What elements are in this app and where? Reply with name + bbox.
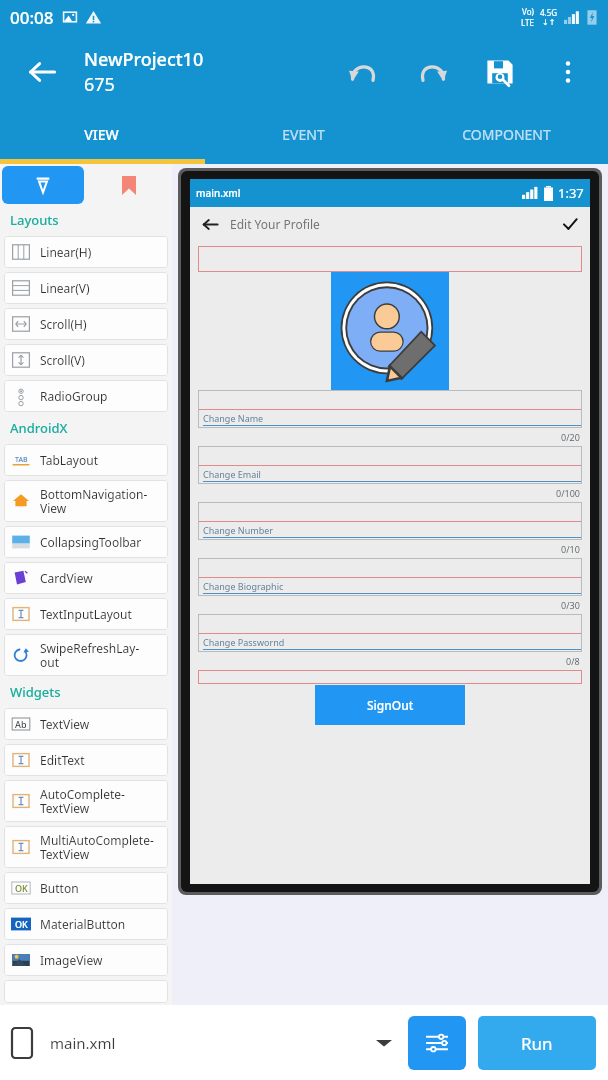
staticText: TabLayout — [40, 452, 98, 468]
staticText: SignOut — [367, 697, 414, 713]
staticText: TextInputLayout — [40, 606, 132, 622]
staticText: Vo) — [522, 6, 534, 17]
button[interactable]: Run — [478, 1016, 596, 1070]
staticText: Change Name — [203, 412, 264, 424]
button[interactable]: Scroll(H) — [4, 308, 168, 340]
button[interactable]: CardView — [4, 562, 168, 594]
button[interactable]: Linear(V) — [4, 272, 168, 304]
button[interactable]: Palette — [2, 166, 84, 204]
staticText: ImageView — [40, 952, 103, 968]
button[interactable]: Change Email — [198, 446, 582, 484]
button[interactable]: OK — [4, 872, 168, 904]
button[interactable]: Redo — [398, 34, 466, 109]
button[interactable]: Change Name — [198, 390, 582, 428]
button[interactable]: Change Passwornd — [198, 614, 582, 652]
staticText: Layouts — [10, 211, 59, 229]
staticText: CardView — [40, 570, 93, 586]
staticText: ↓↑ — [542, 18, 556, 27]
button[interactable]: TAB — [4, 444, 168, 476]
button[interactable]: CollapsingToolbar — [4, 526, 168, 558]
button[interactable]: Undo — [330, 34, 398, 109]
staticText: Widgets — [10, 683, 61, 701]
button[interactable]: Save — [466, 34, 534, 109]
button[interactable]: ImageView — [4, 944, 168, 976]
button[interactable]: main.xml — [12, 1005, 392, 1080]
staticText: AndroidX — [10, 419, 68, 437]
button[interactable]: Settings — [408, 1016, 466, 1070]
staticText: VIEW — [84, 125, 119, 144]
staticText: CollapsingToolbar — [40, 534, 142, 550]
button[interactable]: More options — [534, 34, 602, 109]
staticText: Ab — [15, 718, 27, 730]
staticText: AutoComplete- TextView — [40, 786, 125, 817]
staticText: TextView — [40, 716, 90, 732]
button[interactable]: TextInputLayout — [4, 598, 168, 630]
staticText: BottomNavigation- View — [40, 486, 148, 517]
staticText: 00:08 — [10, 6, 54, 29]
staticText: MultiAutoComplete- TextView — [40, 832, 154, 863]
button[interactable]: MultiAutoComplete- TextView — [4, 826, 168, 868]
button[interactable]: Done — [558, 212, 582, 236]
staticText: main.xml — [50, 1033, 116, 1053]
staticText: 0/10 — [561, 543, 580, 555]
staticText: Scroll(V) — [40, 352, 85, 368]
staticText: RadioGroup — [40, 388, 108, 404]
button[interactable]: EditText — [4, 744, 168, 776]
button[interactable]: VIEW — [0, 109, 202, 159]
staticText: MaterialButton — [40, 916, 126, 932]
button[interactable]: COMPONENT — [405, 109, 608, 159]
button[interactable]: AutoComplete- TextView — [4, 780, 168, 822]
staticText: COMPONENT — [462, 125, 551, 144]
button[interactable]: Ab — [4, 708, 168, 740]
staticText: Edit Your Profile — [230, 216, 320, 232]
staticText: NewProject10 — [84, 47, 204, 72]
button[interactable]: SwipeRefreshLay- out — [4, 634, 168, 676]
button[interactable]: OK — [4, 908, 168, 940]
staticText: 675 — [84, 72, 115, 97]
staticText: LTE — [521, 17, 534, 28]
button[interactable]: Change Biographic — [198, 558, 582, 596]
staticText: OK — [15, 918, 28, 930]
button[interactable]: BottomNavigation- View — [4, 480, 168, 522]
staticText: 1:37 — [558, 184, 584, 202]
staticText: main.xml — [196, 186, 241, 200]
button[interactable]: SignOut — [315, 685, 465, 725]
button[interactable]: RadioGroup — [4, 380, 168, 412]
button[interactable] — [4, 980, 168, 1003]
staticText: Linear(V) — [40, 280, 90, 296]
button[interactable]: Scroll(V) — [4, 344, 168, 376]
staticText: Linear(H) — [40, 244, 92, 260]
staticText: 0/8 — [566, 655, 580, 667]
staticText: EditText — [40, 752, 85, 768]
button[interactable]: Linear(H) — [4, 236, 168, 268]
staticText: Change Number — [203, 524, 273, 536]
staticText: 4.5G — [540, 7, 558, 18]
staticText: TAB — [15, 455, 28, 465]
staticText: Change Passwornd — [203, 636, 285, 648]
button[interactable]: Back — [198, 212, 222, 236]
staticText: Change Biographic — [203, 580, 284, 592]
staticText: 0/30 — [561, 599, 580, 611]
staticText: 0/100 — [556, 487, 580, 499]
staticText: SwipeRefreshLay- out — [40, 640, 140, 671]
staticText: Run — [521, 1032, 553, 1055]
button[interactable]: EVENT — [202, 109, 405, 159]
staticText: Button — [40, 880, 79, 896]
staticText: Scroll(H) — [40, 316, 87, 332]
button[interactable]: Back — [0, 34, 84, 109]
button[interactable]: Change Number — [198, 502, 582, 540]
staticText: EVENT — [282, 125, 325, 144]
staticText: 0/20 — [561, 431, 580, 443]
button[interactable]: Bookmarks — [86, 164, 172, 206]
staticText: OK — [15, 882, 28, 894]
staticText: Change Email — [203, 468, 261, 480]
